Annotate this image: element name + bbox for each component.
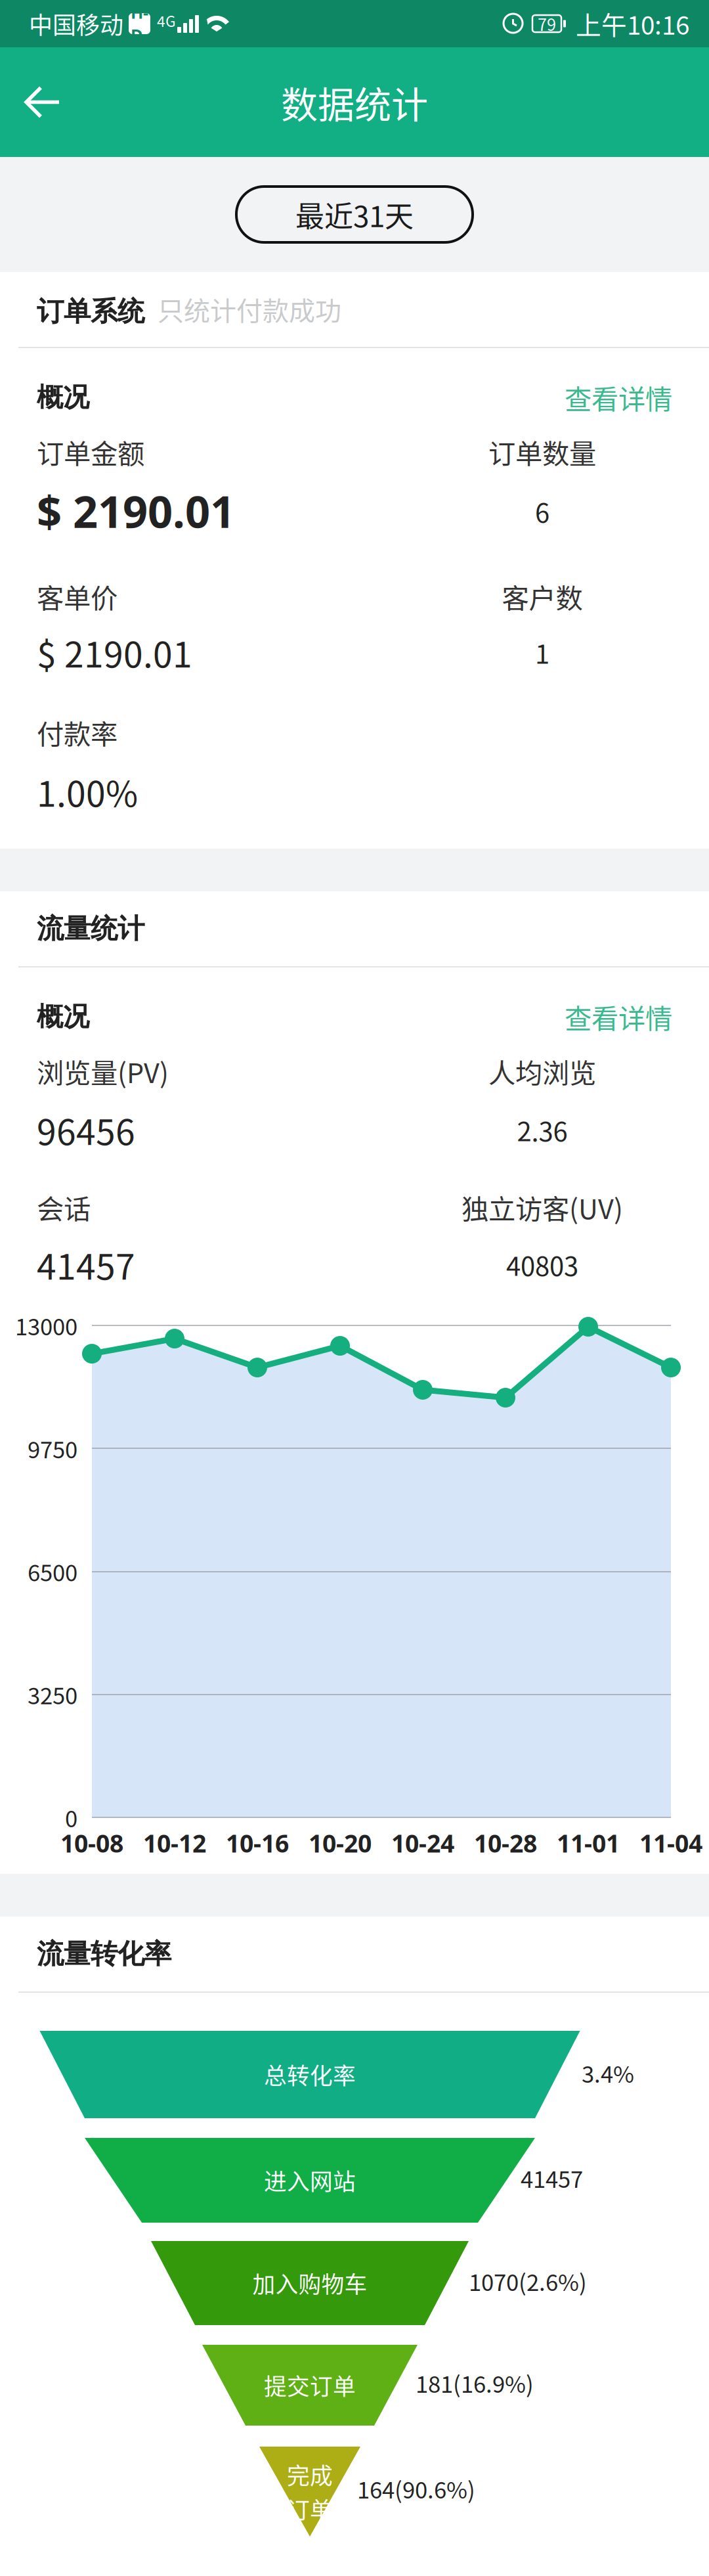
staticText: 1	[535, 633, 549, 671]
staticText: 订单	[287, 2492, 333, 2525]
staticText: 6	[535, 492, 549, 530]
staticText: 最近31天	[295, 193, 414, 235]
staticText: 查看详情	[565, 997, 672, 1036]
staticText: 会话	[37, 1188, 91, 1227]
staticText: 完成	[287, 2458, 333, 2491]
staticText: 6500	[28, 1555, 77, 1588]
staticText: 加入购物车	[252, 2267, 367, 2300]
staticText: 10-08	[60, 1826, 123, 1860]
staticText: 10-24	[391, 1826, 454, 1860]
staticText: $ 2190.01	[37, 627, 192, 678]
staticText: 查看详情	[565, 378, 672, 417]
staticText: 10-20	[309, 1826, 372, 1860]
staticText: 1.00%	[37, 766, 138, 817]
staticText: 概况	[37, 1000, 89, 1033]
staticText: 独立访客(UV)	[462, 1188, 623, 1227]
staticText: $ 2190.01	[37, 481, 235, 541]
staticText: 上午10:16	[576, 5, 689, 42]
staticText: 4G	[157, 10, 176, 31]
button[interactable]: 查看详情	[565, 360, 672, 435]
staticText: 11-04	[639, 1826, 702, 1860]
staticText: 付款率	[37, 713, 118, 752]
staticText: 41457	[37, 1239, 135, 1290]
staticText: 总转化率	[264, 2058, 356, 2091]
staticText: 10-16	[226, 1826, 289, 1860]
staticText: 9750	[28, 1432, 77, 1465]
button[interactable]: 返回	[0, 47, 85, 157]
staticText: 1070(2.6%)	[469, 2265, 587, 2298]
staticText: 订单数量	[488, 432, 596, 472]
staticText: 人均浏览	[488, 1052, 596, 1091]
staticText: 181(16.9%)	[416, 2366, 534, 2399]
staticText: 只统计付款成功	[158, 290, 341, 328]
staticText: 0	[65, 1801, 77, 1834]
staticText: 41457	[521, 2161, 583, 2194]
button[interactable]: 最近31天	[236, 187, 473, 242]
staticText: 流量转化率	[37, 1937, 171, 1971]
staticText: 2.36	[517, 1111, 568, 1149]
staticText: 数据统计	[281, 76, 428, 129]
staticText: 164(90.6%)	[357, 2472, 475, 2505]
staticText: 概况	[37, 381, 89, 414]
staticText: 79	[538, 12, 556, 36]
staticText: 订单系统	[37, 294, 144, 329]
staticText: 13000	[15, 1309, 77, 1342]
staticText: 11-01	[557, 1826, 620, 1860]
staticText: 中国移动	[29, 7, 123, 41]
staticText: 提交订单	[264, 2369, 356, 2402]
staticText: 96456	[37, 1104, 135, 1155]
staticText: 进入网站	[264, 2164, 356, 2197]
staticText: 流量统计	[37, 912, 144, 946]
button[interactable]: 查看详情	[565, 979, 672, 1054]
staticText: 订单金额	[37, 432, 144, 472]
staticText: 客户数	[502, 577, 583, 616]
staticText: 客单价	[37, 577, 118, 616]
staticText: 10-28	[474, 1826, 537, 1860]
staticText: 10-12	[143, 1826, 206, 1860]
staticText: 40803	[506, 1245, 578, 1283]
staticText: 3250	[28, 1678, 77, 1711]
staticText: 浏览量(PV)	[37, 1052, 169, 1091]
staticText: 3.4%	[582, 2056, 634, 2089]
staticText: HD	[131, 1, 148, 46]
